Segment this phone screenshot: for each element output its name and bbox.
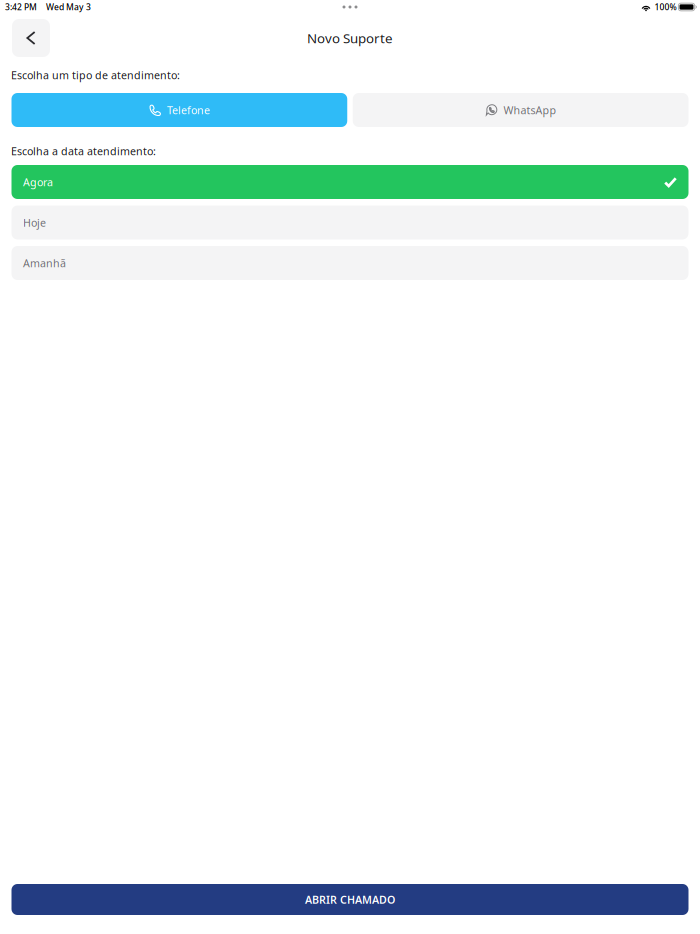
staticText: 100% [654, 1, 676, 13]
staticText: ABRIR CHAMADO [305, 892, 395, 907]
button[interactable]: Amanhã [11, 246, 688, 280]
staticText: Wed May 3 [46, 1, 91, 13]
staticText: WhatsApp [503, 103, 556, 117]
button[interactable]: Hoje [11, 205, 688, 239]
staticText: Escolha um tipo de atendimento: [11, 68, 180, 82]
button[interactable]: Telefone [11, 93, 347, 127]
staticText: Escolha a data atendimento: [11, 144, 156, 158]
staticText: Novo Suporte [307, 29, 393, 47]
staticText: Telefone [167, 103, 210, 117]
staticText: Amanhã [23, 256, 66, 270]
staticText: 3:42 PM [5, 1, 37, 13]
button[interactable]: Back [12, 19, 50, 57]
button[interactable]: Agora [11, 165, 688, 199]
staticText: Hoje [23, 215, 46, 230]
staticText: Agora [23, 175, 53, 189]
button[interactable]: ABRIR CHAMADO [11, 884, 688, 915]
button[interactable]: WhatsApp [353, 93, 689, 127]
